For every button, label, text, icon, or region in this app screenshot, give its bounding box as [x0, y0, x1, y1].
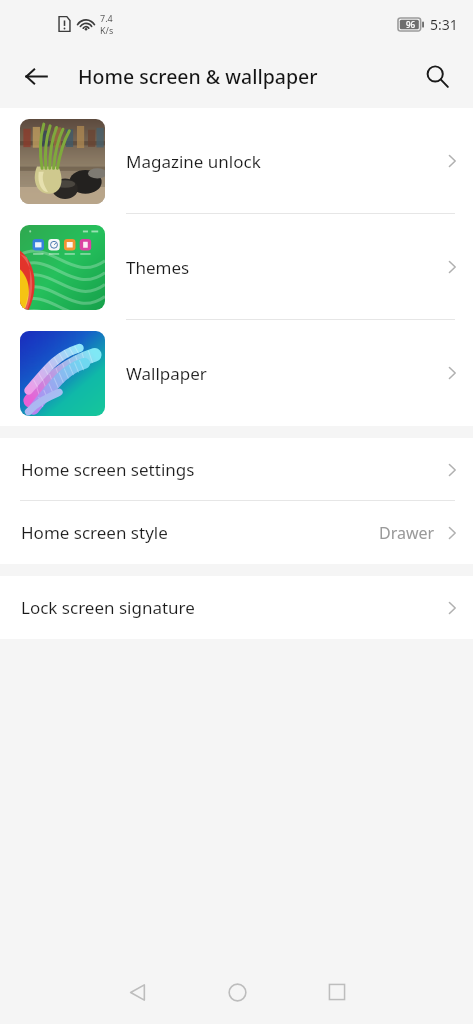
- staticText: Wallpaper: [126, 362, 207, 385]
- button[interactable]: Home screen settings: [0, 438, 473, 501]
- staticText: 5:31: [430, 15, 458, 34]
- staticText: K/s: [100, 24, 114, 36]
- button[interactable]: Back: [16, 56, 56, 96]
- button[interactable]: Home: [199, 968, 275, 1016]
- staticText: Home screen & wallpaper: [78, 63, 318, 90]
- button[interactable]: Back: [99, 968, 175, 1016]
- staticText: Magazine unlock: [126, 150, 261, 173]
- staticText: Drawer: [379, 522, 435, 544]
- button[interactable]: Magazine unlock: [0, 108, 473, 214]
- button[interactable]: Themes: [0, 214, 473, 320]
- staticText: 7.4: [100, 12, 113, 24]
- button[interactable]: Home screen style: [0, 501, 473, 564]
- staticText: Home screen style: [21, 521, 168, 544]
- staticText: Themes: [126, 256, 190, 279]
- button[interactable]: Wallpaper: [0, 320, 473, 426]
- staticText: Home screen settings: [21, 458, 195, 481]
- button[interactable]: Search: [417, 56, 457, 96]
- staticText: 96: [406, 19, 416, 30]
- button[interactable]: Lock screen signature: [0, 576, 473, 639]
- button[interactable]: Recent apps: [299, 968, 375, 1016]
- staticText: Lock screen signature: [21, 596, 195, 619]
